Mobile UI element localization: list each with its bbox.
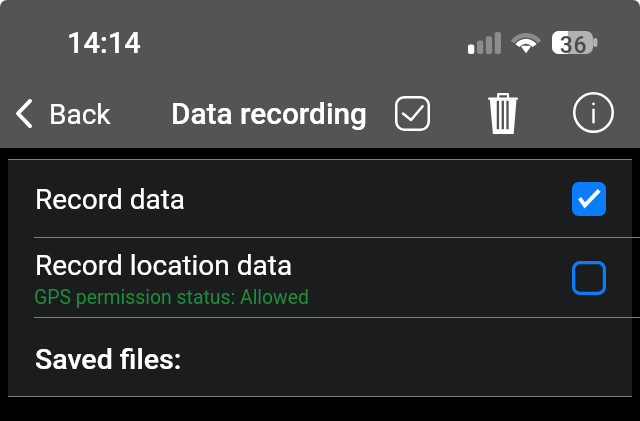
button[interactable]: Select all xyxy=(385,86,440,141)
button[interactable] xyxy=(8,238,632,317)
button[interactable]: Info xyxy=(565,84,621,140)
button[interactable]: Delete xyxy=(475,86,531,140)
staticText: Record location data xyxy=(35,249,293,282)
staticText: 36 xyxy=(553,32,594,55)
button[interactable]: Back xyxy=(6,88,118,138)
staticText: Saved files: xyxy=(35,343,182,376)
staticText: Record data xyxy=(35,183,186,216)
button[interactable] xyxy=(8,317,632,397)
button[interactable] xyxy=(8,159,632,238)
staticText: Back xyxy=(49,98,111,131)
staticText: Data recording xyxy=(171,96,367,131)
staticText: GPS permission status: Allowed xyxy=(34,286,309,309)
staticText: 14:14 xyxy=(67,26,141,60)
